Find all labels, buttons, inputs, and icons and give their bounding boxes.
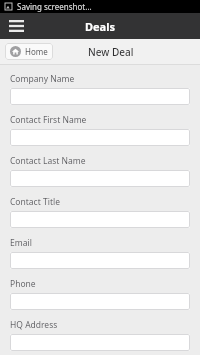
staticText: Contact First Name: [10, 114, 87, 126]
staticText: Email: [10, 237, 32, 249]
staticText: Deals: [85, 19, 116, 34]
staticText: Saving screenshot...: [17, 1, 92, 12]
button[interactable]: HQ Address: [10, 334, 190, 351]
button[interactable]: Open navigation menu: [4, 14, 28, 38]
staticText: Phone: [10, 278, 36, 290]
staticText: Contact Title: [10, 196, 60, 208]
button[interactable]: Contact First Name: [10, 129, 190, 146]
button[interactable]: Email: [10, 252, 190, 269]
staticText: Company Name: [10, 73, 75, 85]
button[interactable]: Company Name: [10, 88, 190, 105]
staticText: Contact Last Name: [10, 155, 86, 167]
button[interactable]: Phone: [10, 293, 190, 310]
staticText: Home: [25, 46, 48, 57]
button[interactable]: Home: [5, 43, 53, 60]
button[interactable]: Contact Title: [10, 211, 190, 228]
button[interactable]: Contact Last Name: [10, 170, 190, 187]
staticText: HQ Address: [10, 319, 58, 331]
staticText: New Deal: [88, 45, 134, 59]
